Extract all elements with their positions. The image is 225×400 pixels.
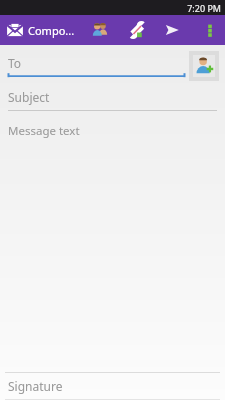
staticText: 7:20 PM <box>187 2 221 14</box>
button[interactable]: Subject <box>0 87 225 111</box>
button[interactable]: Compo... <box>0 21 79 39</box>
staticText: Subject <box>8 89 50 105</box>
button[interactable]: Attach <box>123 17 149 43</box>
button[interactable]: Contacts <box>87 17 113 43</box>
staticText: Compo... <box>28 23 75 38</box>
staticText: Signature <box>8 378 63 394</box>
button[interactable]: Add contact <box>189 51 219 81</box>
button[interactable]: To <box>0 49 185 78</box>
staticText: To <box>8 55 22 71</box>
button[interactable]: More options <box>197 17 223 43</box>
button[interactable]: Message text <box>0 117 225 372</box>
button[interactable]: Signature <box>0 373 225 399</box>
staticText: Message text <box>8 123 80 139</box>
button[interactable]: Send <box>159 17 185 43</box>
